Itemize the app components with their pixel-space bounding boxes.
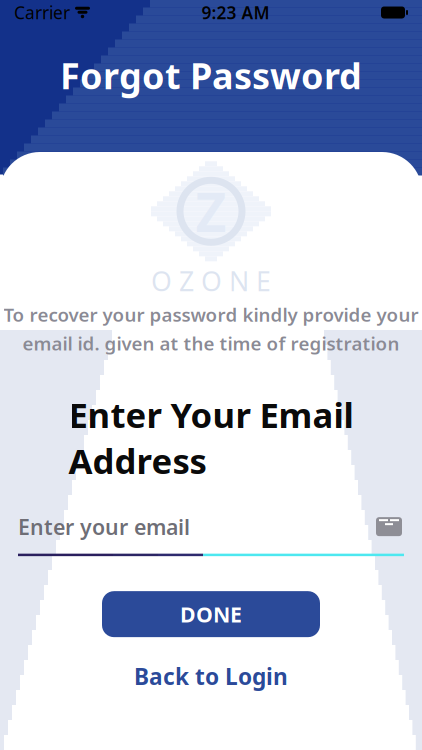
staticText: 9:23 AM: [201, 1, 269, 24]
button[interactable]: DONE: [102, 591, 320, 637]
staticText: DONE: [180, 600, 242, 628]
staticText: Enter your email: [18, 512, 190, 541]
staticText: O Z O N E: [151, 263, 271, 299]
staticText: Enter Your Email Address: [68, 392, 353, 484]
staticText: Z: [195, 176, 226, 247]
staticText: Carrier: [14, 1, 70, 24]
button[interactable]: Back to Login: [118, 655, 304, 697]
staticText: To recover your password kindly provide …: [3, 302, 418, 327]
staticText: Back to Login: [134, 661, 288, 691]
staticText: email id. given at the time of registrat…: [22, 331, 399, 356]
staticText: Forgot Password: [60, 51, 362, 99]
